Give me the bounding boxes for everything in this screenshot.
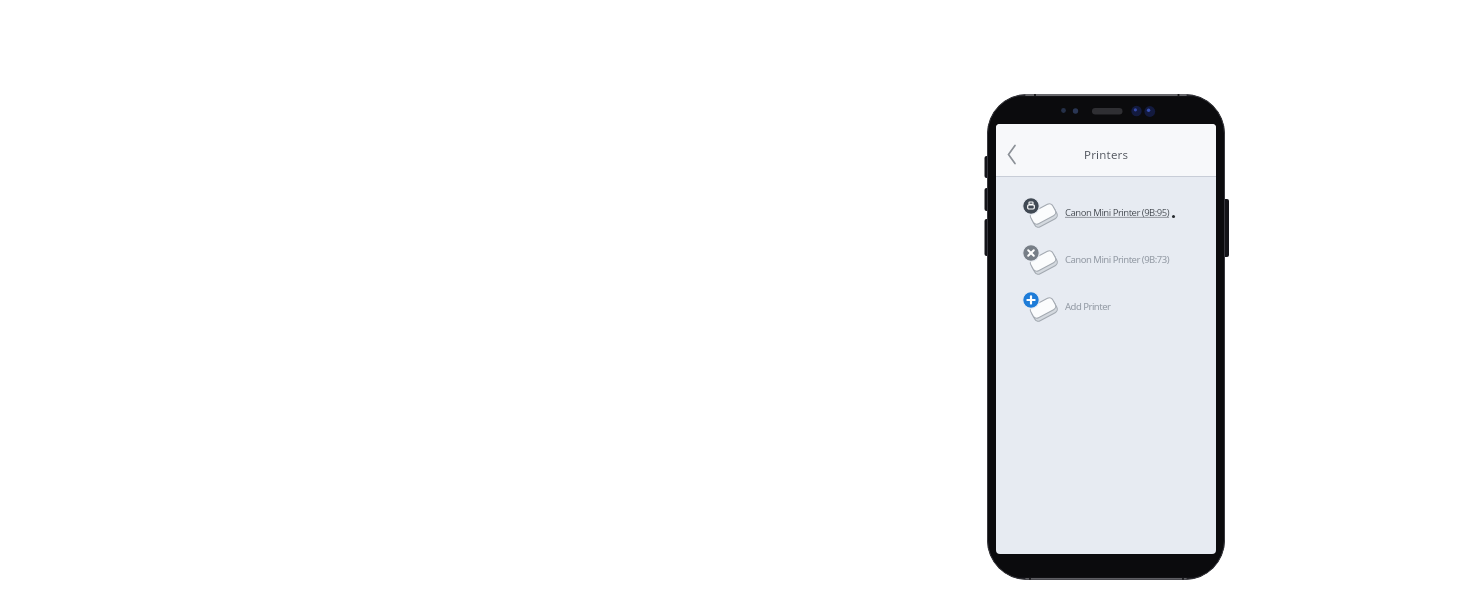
staticText: Add Printer <box>1065 300 1111 313</box>
staticText: Printers <box>1084 147 1129 163</box>
button[interactable]: Canon Mini Printer (9B:73) <box>1021 239 1211 279</box>
button[interactable]: Canon Mini Printer (9B:95) <box>1021 192 1211 232</box>
staticText: Canon Mini Printer (9B:95) <box>1065 206 1170 219</box>
button[interactable]: Add Printer <box>1021 286 1211 326</box>
staticText: Canon Mini Printer (9B:73) <box>1065 253 1170 266</box>
button[interactable] <box>1000 143 1024 167</box>
